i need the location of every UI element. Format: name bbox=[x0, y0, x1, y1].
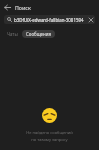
staticText: Чаты bbox=[7, 31, 18, 37]
button[interactable]: Clear search bbox=[87, 16, 95, 24]
button[interactable]: Back bbox=[0, 0, 14, 14]
staticText: Поиск bbox=[15, 4, 31, 11]
staticText: Не найдено сообщений по такому запросу bbox=[26, 130, 73, 142]
button[interactable]: b3DfUiX-edward-fallbian-3081594 bbox=[4, 15, 95, 24]
button[interactable]: Сообщения bbox=[22, 30, 55, 38]
button[interactable]: Чаты bbox=[4, 30, 21, 38]
staticText: b3DfUiX-edward-fallbian-3081594 bbox=[14, 17, 84, 23]
staticText: Сообщения bbox=[26, 31, 51, 37]
